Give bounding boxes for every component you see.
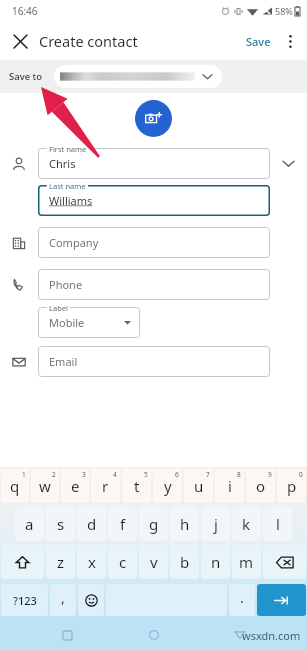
staticText: 58% — [275, 5, 293, 17]
button[interactable]: n — [201, 545, 230, 579]
staticText: s — [57, 514, 65, 534]
staticText: Company — [49, 235, 99, 250]
staticText: Label — [49, 303, 68, 313]
button[interactable]: h — [170, 507, 199, 541]
staticText: x — [88, 552, 96, 572]
button[interactable]: r — [91, 469, 120, 503]
button[interactable]: Add photo — [135, 100, 172, 137]
button[interactable]: j — [201, 507, 230, 541]
button[interactable]: g — [139, 507, 168, 541]
button[interactable]: Label — [38, 307, 140, 338]
button[interactable]: p — [277, 469, 306, 503]
staticText: 0 — [299, 470, 303, 479]
button[interactable]: Back — [228, 623, 252, 647]
staticText: f — [120, 514, 126, 534]
staticText: Save — [246, 34, 271, 49]
button[interactable]: x — [77, 545, 106, 579]
staticText: Create contact — [39, 31, 138, 51]
staticText: r — [102, 476, 109, 496]
button[interactable]: e — [61, 469, 89, 503]
staticText: First name — [49, 144, 87, 154]
button[interactable]: f — [108, 507, 137, 541]
button[interactable]: Select account — [54, 65, 222, 88]
button[interactable]: t — [122, 469, 151, 503]
button[interactable]: k — [232, 507, 261, 541]
button[interactable]: Close — [5, 26, 35, 56]
button[interactable]: a — [15, 507, 44, 541]
staticText: c — [119, 552, 127, 572]
button[interactable]: Recent apps — [55, 623, 79, 647]
staticText: 8 — [237, 470, 241, 479]
staticText: . — [240, 588, 244, 607]
button[interactable]: Phone — [38, 269, 270, 300]
button[interactable]: Emoji — [78, 584, 104, 616]
button[interactable]: o — [246, 469, 275, 503]
button[interactable]: u — [184, 469, 213, 503]
staticText: e — [71, 476, 80, 496]
staticText: 9 — [268, 470, 272, 479]
button[interactable]: m — [232, 545, 261, 579]
staticText: j — [214, 514, 218, 534]
button[interactable]: i — [215, 469, 244, 503]
button[interactable]: Home — [142, 623, 166, 647]
staticText: 16:46 — [12, 4, 38, 18]
staticText: , — [61, 588, 65, 607]
button[interactable]: l — [263, 507, 292, 541]
button[interactable]: q — [1, 469, 29, 503]
staticText: o — [256, 476, 266, 496]
staticText: Williams — [49, 193, 93, 208]
button[interactable]: First name — [38, 148, 270, 179]
staticText: m — [239, 552, 254, 572]
staticText: h — [180, 514, 190, 534]
staticText: k — [242, 514, 251, 534]
button[interactable]: . — [229, 584, 255, 616]
staticText: a — [25, 514, 34, 534]
staticText: Phone — [49, 277, 83, 292]
staticText: 2 — [52, 470, 56, 479]
staticText: ?123 — [13, 593, 37, 608]
staticText: i — [228, 476, 232, 496]
button[interactable]: b — [170, 545, 199, 579]
staticText: 3 — [82, 470, 86, 479]
button[interactable]: y — [153, 469, 182, 503]
button[interactable]: Backspace — [263, 545, 306, 579]
staticText: u — [194, 476, 204, 496]
button[interactable]: More options — [276, 27, 304, 55]
button[interactable]: Email — [38, 346, 270, 377]
staticText: 5 — [144, 470, 148, 479]
staticText: n — [211, 552, 221, 572]
button[interactable]: Expand name — [270, 148, 307, 179]
staticText: l — [276, 514, 280, 534]
staticText: 4 — [113, 470, 117, 479]
button[interactable]: s — [46, 507, 75, 541]
button[interactable]: Company — [38, 227, 270, 258]
staticText: Email — [49, 354, 78, 369]
button[interactable]: Enter — [257, 584, 306, 616]
button[interactable]: Last name — [38, 185, 270, 216]
staticText: z — [57, 552, 65, 572]
staticText: Chris — [49, 156, 76, 171]
staticText: Mobile — [49, 315, 85, 330]
staticText: b — [180, 552, 190, 572]
staticText: t — [134, 476, 140, 496]
button[interactable]: w — [31, 469, 59, 503]
staticText: y — [164, 476, 172, 496]
staticText: w — [39, 476, 51, 496]
staticText: 7 — [206, 470, 210, 479]
button[interactable]: , — [50, 584, 76, 616]
button[interactable]: z — [46, 545, 75, 579]
button[interactable]: c — [108, 545, 137, 579]
button[interactable]: d — [77, 507, 106, 541]
staticText: g — [149, 514, 159, 534]
button[interactable]: Save — [241, 29, 276, 54]
staticText: p — [287, 476, 297, 496]
button[interactable]: Shift — [1, 545, 44, 579]
staticText: q — [10, 476, 20, 496]
button[interactable]: ?123 — [1, 584, 48, 616]
staticText: d — [87, 514, 97, 534]
staticText: 6 — [175, 470, 179, 479]
staticText: v — [150, 552, 158, 572]
staticText: 1 — [22, 470, 26, 479]
button[interactable]: v — [139, 545, 168, 579]
